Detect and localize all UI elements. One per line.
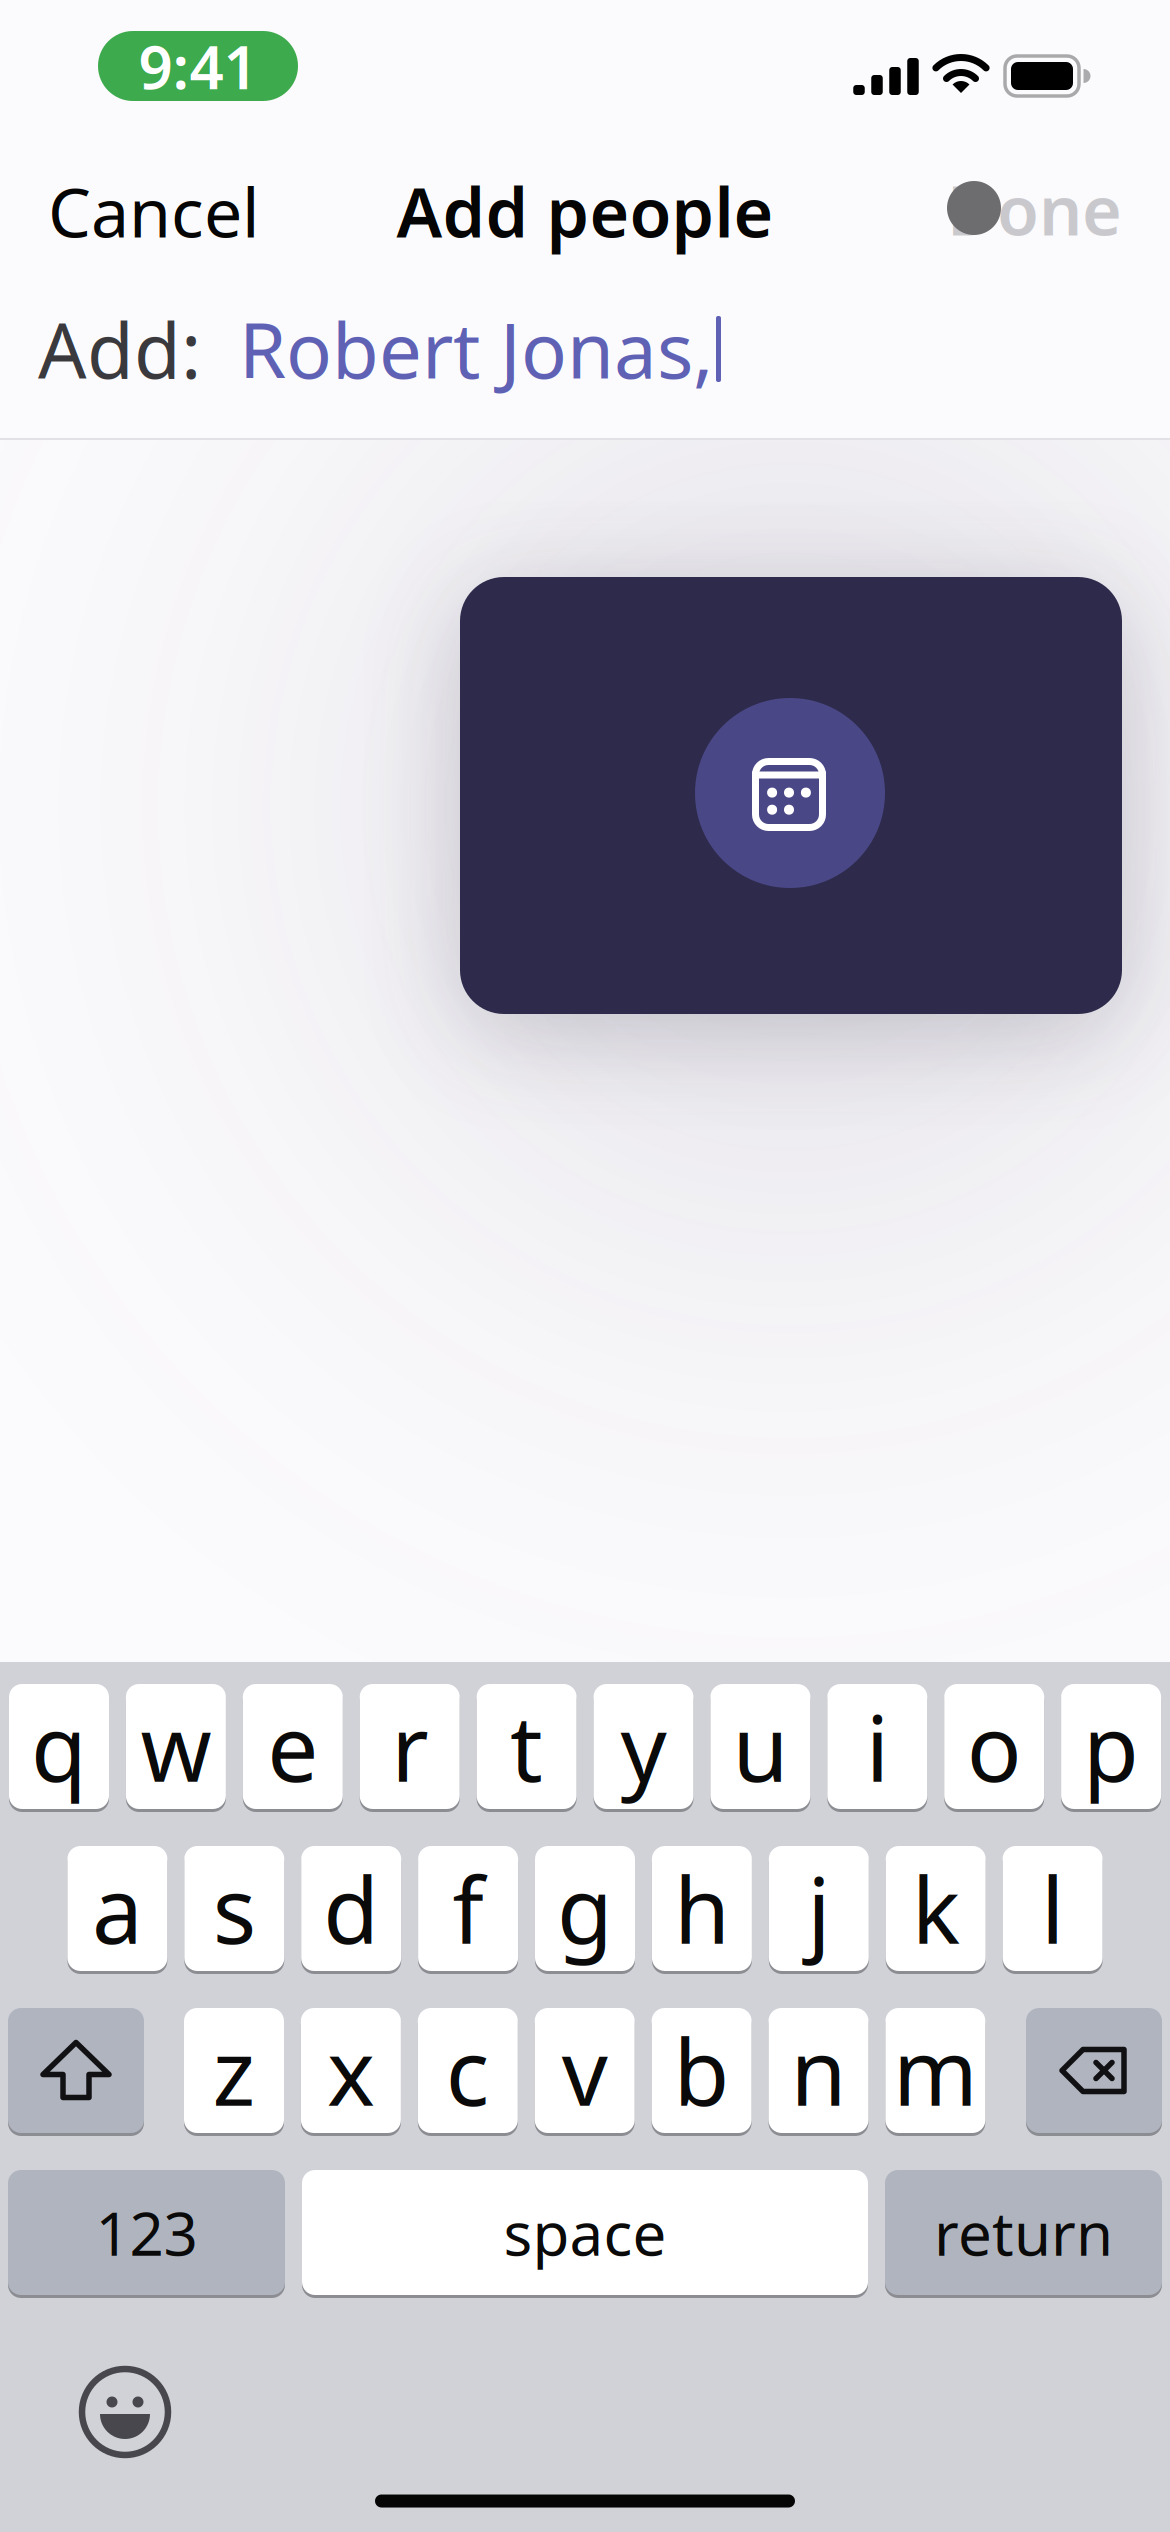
- button[interactable]: Cancel: [48, 166, 308, 256]
- button[interactable]: l: [1003, 1844, 1103, 1972]
- staticText: h: [674, 1848, 730, 1969]
- staticText: s: [213, 1848, 256, 1969]
- button[interactable]: e: [243, 1682, 343, 1810]
- staticText: o: [967, 1686, 1022, 1807]
- staticText: x: [327, 2010, 375, 2131]
- button[interactable]: b: [652, 2006, 752, 2134]
- button[interactable]: return: [885, 2168, 1162, 2296]
- button[interactable]: Emoji: [82, 2369, 168, 2455]
- staticText: Done: [947, 164, 1122, 254]
- button[interactable]: Done: [882, 164, 1122, 254]
- staticText: return: [934, 2193, 1113, 2272]
- button[interactable]: m: [885, 2006, 985, 2134]
- button[interactable]: s: [184, 1844, 284, 1972]
- button[interactable]: f: [418, 1844, 518, 1972]
- staticText: Robert Jonas,: [239, 298, 713, 399]
- button[interactable]: Shift: [8, 2006, 144, 2134]
- staticText: Add people: [396, 166, 773, 256]
- button[interactable]: z: [184, 2006, 284, 2134]
- staticText: q: [31, 1686, 87, 1807]
- button[interactable]: u: [710, 1682, 810, 1810]
- button[interactable]: a: [67, 1844, 167, 1972]
- button[interactable]: w: [126, 1682, 226, 1810]
- button[interactable]: d: [301, 1844, 401, 1972]
- button[interactable]: o: [944, 1682, 1044, 1810]
- button[interactable]: Delete: [1026, 2006, 1162, 2134]
- staticText: z: [212, 2010, 255, 2131]
- staticText: r: [391, 1686, 428, 1807]
- staticText: t: [510, 1686, 543, 1807]
- staticText: v: [562, 2010, 608, 2131]
- staticText: j: [807, 1848, 830, 1969]
- staticText: 9:41: [138, 26, 257, 106]
- staticText: g: [557, 1848, 613, 1969]
- staticText: a: [92, 1848, 143, 1969]
- staticText: d: [323, 1848, 379, 1969]
- button[interactable]: n: [768, 2006, 868, 2134]
- button[interactable]: i: [827, 1682, 927, 1810]
- staticText: n: [790, 2010, 846, 2131]
- staticText: b: [674, 2010, 730, 2131]
- button[interactable]: c: [418, 2006, 518, 2134]
- staticText: w: [140, 1686, 211, 1807]
- staticText: 123: [95, 2193, 197, 2272]
- button[interactable]: q: [9, 1682, 109, 1810]
- button[interactable]: h: [652, 1844, 752, 1972]
- button[interactable]: g: [535, 1844, 635, 1972]
- staticText: u: [732, 1686, 788, 1807]
- button[interactable]: t: [477, 1682, 577, 1810]
- staticText: f: [453, 1848, 484, 1969]
- staticText: p: [1083, 1686, 1139, 1807]
- staticText: l: [1041, 1848, 1064, 1969]
- button[interactable]: j: [769, 1844, 869, 1972]
- staticText: k: [912, 1848, 960, 1969]
- button[interactable]: space: [302, 2168, 868, 2296]
- staticText: Cancel: [48, 166, 260, 256]
- staticText: space: [503, 2193, 666, 2272]
- staticText: Add:: [38, 298, 201, 399]
- button[interactable]: v: [535, 2006, 635, 2134]
- staticText: m: [893, 2010, 978, 2131]
- button[interactable]: r: [360, 1682, 460, 1810]
- button[interactable]: 123: [8, 2168, 285, 2296]
- staticText: i: [866, 1686, 889, 1807]
- button[interactable]: p: [1061, 1682, 1161, 1810]
- staticText: e: [267, 1686, 318, 1807]
- button[interactable]: y: [593, 1682, 693, 1810]
- staticText: y: [620, 1686, 666, 1807]
- button[interactable]: x: [301, 2006, 401, 2134]
- button[interactable]: k: [886, 1844, 986, 1972]
- staticText: c: [446, 2010, 490, 2131]
